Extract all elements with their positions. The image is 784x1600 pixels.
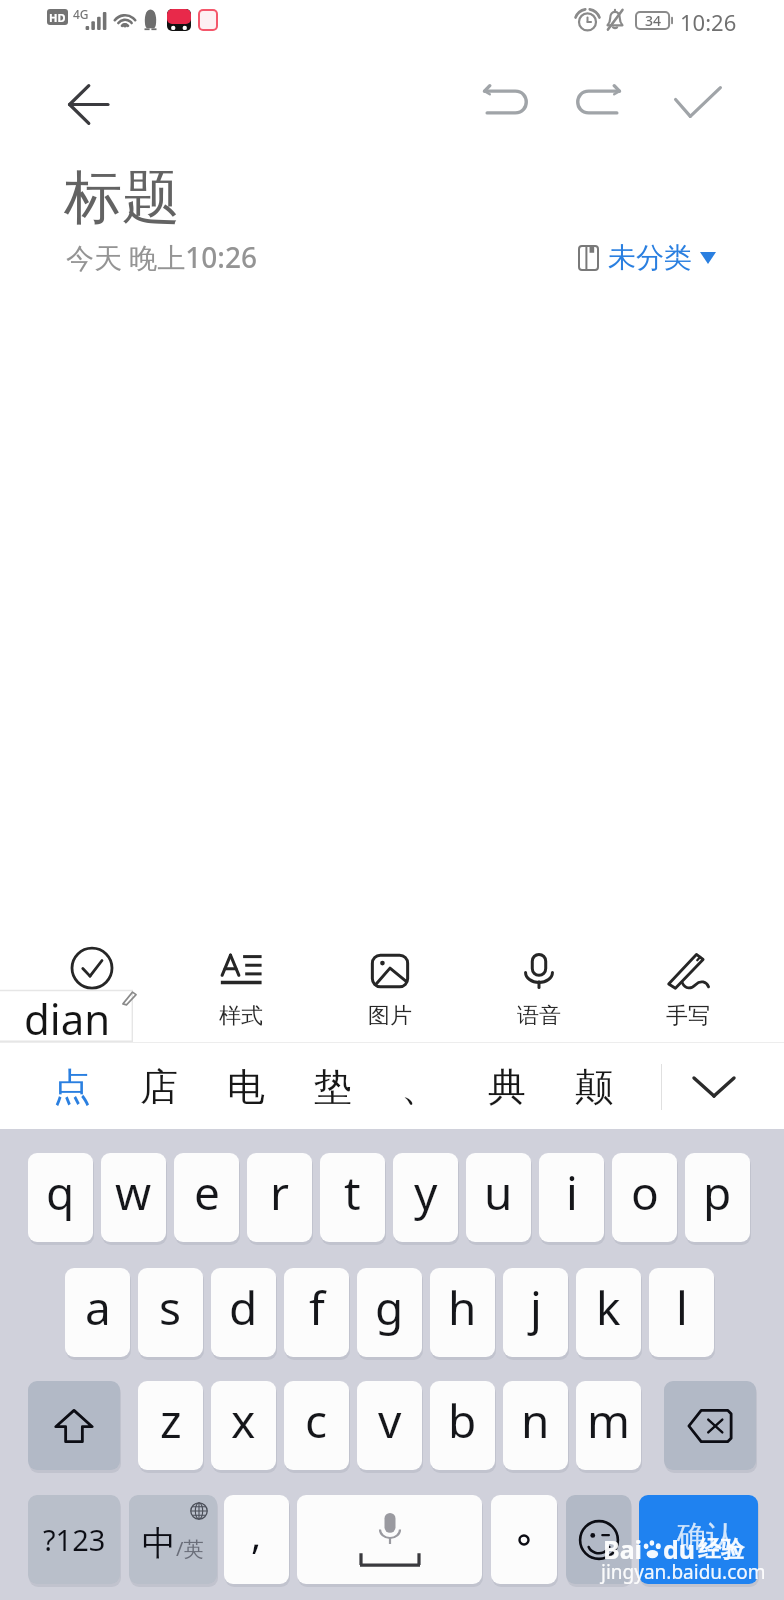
staticText: HD	[49, 10, 66, 25]
staticText: d	[229, 1276, 258, 1339]
staticText: t	[344, 1161, 361, 1224]
staticText: f	[309, 1276, 325, 1339]
staticText: 10:26	[680, 7, 737, 37]
button[interactable]: e	[174, 1153, 239, 1242]
staticText: z	[160, 1389, 182, 1452]
button[interactable]: Redo	[561, 62, 641, 142]
staticText: h	[448, 1276, 477, 1339]
staticText: w	[115, 1161, 152, 1224]
button[interactable]: Space	[297, 1495, 482, 1584]
staticText: m	[587, 1389, 631, 1452]
staticText: j	[530, 1276, 542, 1339]
button[interactable]: g	[357, 1268, 422, 1357]
button[interactable]: ,	[224, 1495, 289, 1584]
button[interactable]: d	[211, 1268, 276, 1357]
button[interactable]: Confirm	[639, 1495, 758, 1584]
button[interactable]: j	[503, 1268, 568, 1357]
staticText: q	[46, 1161, 75, 1224]
staticText: 标题	[64, 161, 180, 234]
staticText: g	[375, 1276, 404, 1339]
button[interactable]: i	[539, 1153, 604, 1242]
button[interactable]: Back	[52, 68, 124, 140]
staticText: a	[85, 1276, 111, 1339]
staticText: 手写	[666, 1002, 710, 1030]
staticText: 今天 晚上10:26	[66, 238, 257, 276]
staticText: 电	[227, 1063, 265, 1111]
staticText: o	[631, 1161, 659, 1224]
button[interactable]: b	[430, 1381, 495, 1470]
button[interactable]: 垫	[289, 1044, 376, 1129]
staticText: n	[521, 1389, 550, 1452]
staticText: 颠	[575, 1063, 613, 1111]
staticText: s	[159, 1276, 182, 1339]
staticText: 垫	[314, 1063, 352, 1111]
staticText: c	[305, 1389, 328, 1452]
staticText: 典	[488, 1063, 526, 1111]
button[interactable]: 语音	[464, 940, 613, 1040]
button[interactable]: l	[649, 1268, 714, 1357]
button[interactable]: o	[612, 1153, 677, 1242]
staticText: y	[414, 1161, 438, 1224]
staticText: 确认	[677, 1518, 735, 1555]
button[interactable]: x	[211, 1381, 276, 1470]
button[interactable]: v	[357, 1381, 422, 1470]
button[interactable]: z	[138, 1381, 203, 1470]
staticText: dian	[24, 990, 111, 1041]
staticText: 点	[53, 1063, 91, 1111]
button[interactable]: q	[28, 1153, 93, 1242]
staticText: Bai	[603, 1532, 643, 1566]
button[interactable]: r	[247, 1153, 312, 1242]
button[interactable]: 未分类	[572, 236, 722, 279]
button[interactable]: Done	[658, 62, 738, 142]
staticText: x	[231, 1389, 256, 1452]
staticText: i	[566, 1161, 578, 1224]
button[interactable]: k	[576, 1268, 641, 1357]
staticText: r	[270, 1161, 289, 1224]
staticText: 图片	[368, 1002, 412, 1030]
button[interactable]: 样式	[166, 940, 315, 1040]
staticText: k	[596, 1276, 621, 1339]
button[interactable]: t	[320, 1153, 385, 1242]
button[interactable]: p	[685, 1153, 750, 1242]
button[interactable]: h	[430, 1268, 495, 1357]
staticText: 经验	[698, 1535, 744, 1564]
button[interactable]: Expand candidates	[666, 1044, 761, 1129]
button[interactable]: w	[101, 1153, 166, 1242]
staticText: l	[676, 1276, 688, 1339]
button[interactable]: Shift	[28, 1381, 120, 1470]
staticText: ?123	[43, 1520, 106, 1559]
button[interactable]: s	[138, 1268, 203, 1357]
button[interactable]: 手写	[613, 940, 762, 1040]
staticText: 店	[140, 1063, 178, 1111]
button[interactable]: f	[284, 1268, 349, 1357]
button[interactable]: u	[466, 1153, 531, 1242]
button[interactable]: Language	[129, 1495, 217, 1584]
button[interactable]: 图片	[315, 940, 464, 1040]
staticText: b	[448, 1389, 477, 1452]
button[interactable]	[17, 940, 166, 1040]
button[interactable]: Symbols	[28, 1495, 120, 1584]
button[interactable]: m	[576, 1381, 641, 1470]
button[interactable]: a	[65, 1268, 130, 1357]
staticText: ,	[251, 1508, 262, 1560]
staticText: 中	[142, 1522, 176, 1565]
staticText: 4G	[73, 6, 89, 22]
button[interactable]: 。	[491, 1495, 557, 1584]
button[interactable]: Undo	[463, 62, 543, 142]
button[interactable]: 、	[376, 1044, 463, 1129]
button[interactable]: y	[393, 1153, 458, 1242]
button[interactable]: 典	[463, 1044, 550, 1129]
button[interactable]: 颠	[550, 1044, 637, 1129]
button[interactable]: 店	[115, 1044, 202, 1129]
button[interactable]: Emoji	[566, 1495, 631, 1584]
button[interactable]: n	[503, 1381, 568, 1470]
staticText: v	[378, 1389, 402, 1452]
staticText: 、	[401, 1063, 439, 1111]
staticText: u	[484, 1161, 513, 1224]
button[interactable]: 点	[28, 1044, 115, 1129]
button[interactable]: Backspace	[664, 1381, 756, 1470]
staticText: e	[194, 1161, 220, 1224]
button[interactable]: c	[284, 1381, 349, 1470]
staticText: jingyan.baidu.com	[601, 1559, 766, 1585]
button[interactable]: 电	[202, 1044, 289, 1129]
